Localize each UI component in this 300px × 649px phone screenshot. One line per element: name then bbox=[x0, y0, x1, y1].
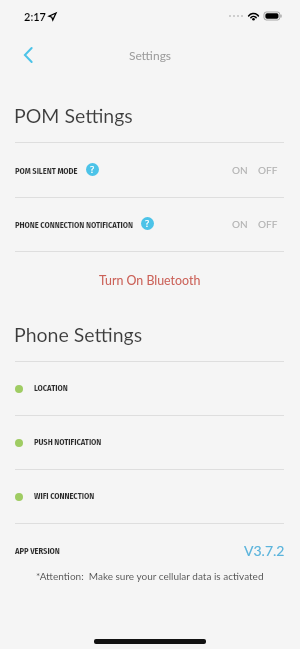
button[interactable]: Help bbox=[141, 217, 154, 230]
staticText: ? bbox=[90, 164, 95, 175]
staticText: LOCATION bbox=[34, 383, 68, 393]
staticText: *Attention: Make sure your cellular data… bbox=[36, 570, 264, 582]
button[interactable]: ON bbox=[232, 164, 248, 176]
staticText: PUSH NOTIFICATION bbox=[34, 437, 102, 447]
button[interactable]: LOCATION bbox=[0, 361, 300, 415]
staticText: Phone Settings bbox=[14, 323, 143, 346]
staticText: WIFI CONNECTION bbox=[34, 491, 95, 501]
staticText: POM SILENT MODE bbox=[15, 166, 78, 176]
staticText: POM Settings bbox=[14, 104, 133, 127]
button[interactable]: OFF bbox=[258, 164, 278, 176]
staticText: Turn On Bluetooth bbox=[99, 273, 201, 288]
button[interactable]: Back bbox=[12, 39, 44, 71]
button[interactable]: OFF bbox=[258, 218, 278, 230]
button[interactable]: Turn On Bluetooth bbox=[0, 271, 300, 289]
button[interactable]: WIFI CONNECTION bbox=[0, 469, 300, 523]
staticText: PHONE CONNECTION NOTIFICATION bbox=[15, 220, 133, 230]
staticText: ? bbox=[145, 218, 150, 229]
staticText: APP VERSION bbox=[15, 546, 60, 556]
staticText: Settings bbox=[129, 48, 172, 62]
button[interactable]: PUSH NOTIFICATION bbox=[0, 415, 300, 469]
staticText: 2:17 bbox=[24, 10, 46, 23]
button[interactable]: PHONE CONNECTION NOTIFICATION bbox=[0, 197, 300, 251]
button[interactable]: ON bbox=[232, 218, 248, 230]
button[interactable]: Help bbox=[86, 163, 99, 176]
staticText: V3.7.2 bbox=[244, 542, 285, 559]
button[interactable]: POM SILENT MODE bbox=[0, 143, 300, 197]
